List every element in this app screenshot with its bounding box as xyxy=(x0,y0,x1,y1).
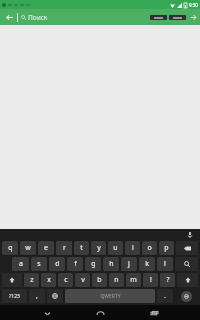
staticText: h xyxy=(109,259,114,269)
staticText: g xyxy=(91,259,96,269)
staticText: y xyxy=(97,243,101,253)
button[interactable]: k xyxy=(139,257,155,271)
button[interactable]: f xyxy=(67,257,83,271)
button[interactable]: Suggestion xyxy=(169,15,186,20)
button[interactable]: More xyxy=(189,13,197,21)
staticText: u xyxy=(113,243,118,253)
staticText: i xyxy=(132,243,134,253)
button[interactable]: Home xyxy=(93,306,107,320)
button[interactable]: y xyxy=(91,241,106,255)
staticText: k xyxy=(145,259,149,269)
button[interactable]: a xyxy=(12,257,29,271)
button[interactable]: g xyxy=(85,257,101,271)
button[interactable]: QWERTY xyxy=(65,289,155,303)
button[interactable]: m xyxy=(126,273,141,287)
button[interactable]: d xyxy=(49,257,65,271)
button[interactable]: w xyxy=(20,241,36,255)
staticText: j xyxy=(128,259,130,269)
button[interactable]: Recents xyxy=(147,306,161,320)
staticText: . xyxy=(164,291,166,301)
button[interactable]: r xyxy=(56,241,72,255)
staticText: z xyxy=(30,275,34,285)
staticText: a xyxy=(19,259,23,269)
button[interactable]: Enter xyxy=(175,289,198,303)
button[interactable]: e xyxy=(38,241,54,255)
button[interactable]: Поиск xyxy=(28,9,150,25)
staticText: ! xyxy=(150,275,152,285)
staticText: m xyxy=(130,275,137,285)
button[interactable]: ? xyxy=(160,273,175,287)
button[interactable]: x xyxy=(41,273,56,287)
button[interactable]: h xyxy=(103,257,119,271)
button[interactable]: ! xyxy=(143,273,158,287)
staticText: s xyxy=(37,259,41,269)
staticText: v xyxy=(81,275,85,285)
button[interactable]: ?123 xyxy=(2,289,27,303)
staticText: q xyxy=(8,243,13,253)
staticText: e xyxy=(44,243,48,253)
button[interactable]: Backspace xyxy=(176,241,198,255)
staticText: o xyxy=(147,243,152,253)
staticText: , xyxy=(36,291,38,301)
button[interactable]: . xyxy=(157,289,173,303)
staticText: Поиск xyxy=(28,13,48,22)
button[interactable]: n xyxy=(109,273,124,287)
button[interactable]: Shift xyxy=(2,273,22,287)
staticText: w xyxy=(25,243,31,253)
button[interactable]: Change language xyxy=(47,289,63,303)
staticText: r xyxy=(63,243,66,253)
staticText: QWERTY xyxy=(100,293,121,300)
button[interactable]: Suggestion xyxy=(150,15,167,20)
staticText: t xyxy=(80,243,83,253)
button[interactable]: o xyxy=(142,241,157,255)
staticText: ?123 xyxy=(9,293,20,300)
staticText: x xyxy=(47,275,51,285)
button[interactable]: l xyxy=(157,257,173,271)
button[interactable]: b xyxy=(92,273,107,287)
staticText: f xyxy=(74,259,77,269)
button[interactable]: Back xyxy=(40,306,54,320)
button[interactable]: j xyxy=(121,257,137,271)
button[interactable]: p xyxy=(159,241,174,255)
button[interactable]: Back xyxy=(3,11,15,23)
button[interactable]: Voice input xyxy=(185,230,194,239)
button[interactable]: c xyxy=(58,273,73,287)
button[interactable]: s xyxy=(31,257,47,271)
staticText: ? xyxy=(166,275,170,285)
staticText: p xyxy=(164,243,169,253)
staticText: b xyxy=(97,275,102,285)
button[interactable]: v xyxy=(75,273,90,287)
button[interactable]: Shift xyxy=(177,273,198,287)
button[interactable]: z xyxy=(24,273,39,287)
staticText: l xyxy=(164,259,166,269)
staticText: c xyxy=(64,275,68,285)
button[interactable]: i xyxy=(125,241,140,255)
button[interactable]: , xyxy=(29,289,45,303)
staticText: 9:50 xyxy=(189,2,198,8)
button[interactable]: t xyxy=(74,241,89,255)
button[interactable]: q xyxy=(2,241,18,255)
button[interactable]: u xyxy=(108,241,123,255)
staticText: d xyxy=(55,259,60,269)
staticText: n xyxy=(114,275,119,285)
button[interactable]: Search xyxy=(175,257,198,271)
